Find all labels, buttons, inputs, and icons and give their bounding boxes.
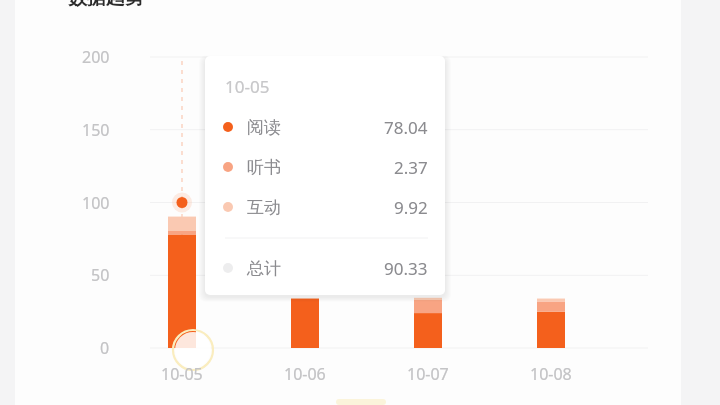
- button[interactable]: Data trend stacked bar chart, 10-05 sele…: [0, 0, 720, 405]
